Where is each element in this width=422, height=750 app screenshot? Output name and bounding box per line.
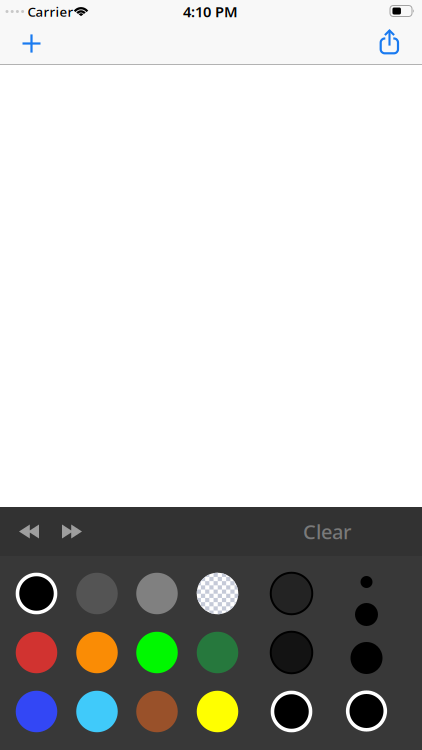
button[interactable]: Dark gray bbox=[76, 573, 118, 614]
button[interactable]: Medium opacity bbox=[271, 632, 312, 673]
button[interactable]: Red bbox=[16, 632, 57, 673]
button[interactable]: Low opacity bbox=[271, 573, 312, 614]
staticText: Carrier bbox=[27, 3, 73, 20]
button[interactable]: Blue bbox=[16, 691, 57, 732]
button[interactable]: Dark green bbox=[197, 632, 238, 673]
button[interactable]: Cyan bbox=[76, 691, 118, 732]
button[interactable]: Gray bbox=[136, 573, 178, 614]
button[interactable]: Full opacity bbox=[271, 691, 312, 732]
button[interactable]: Redo bbox=[54, 516, 90, 546]
button[interactable]: Medium brush bbox=[355, 603, 378, 626]
button[interactable]: Brown bbox=[136, 691, 178, 732]
button[interactable]: Undo bbox=[11, 516, 47, 546]
button[interactable]: Clear bbox=[292, 513, 362, 549]
staticText: Clear bbox=[303, 518, 351, 545]
button[interactable]: Extra large brush bbox=[346, 690, 387, 731]
button[interactable]: Eraser bbox=[197, 573, 238, 614]
button[interactable]: Small brush bbox=[360, 576, 372, 588]
button[interactable]: Yellow bbox=[197, 691, 238, 732]
staticText: 4:10 PM bbox=[183, 2, 238, 21]
button[interactable]: Orange bbox=[76, 632, 118, 673]
button[interactable]: Green bbox=[136, 632, 178, 673]
button[interactable]: Black bbox=[16, 573, 57, 614]
button[interactable]: Large brush bbox=[350, 642, 382, 674]
button[interactable]: Add bbox=[9, 23, 53, 63]
button[interactable]: Share bbox=[367, 22, 411, 62]
